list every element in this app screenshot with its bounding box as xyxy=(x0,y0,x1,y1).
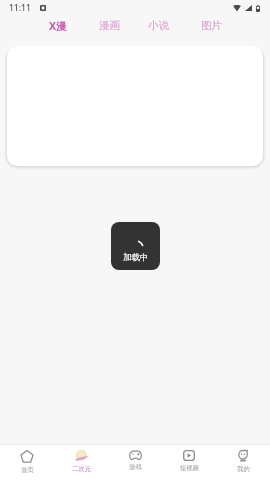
staticText: 短视频 xyxy=(180,464,199,472)
staticText: 漫画 xyxy=(99,19,120,32)
staticText: 加载中 xyxy=(123,252,149,263)
button[interactable]: X漫 xyxy=(47,15,69,37)
button[interactable]: 游戏 xyxy=(108,445,162,480)
button[interactable]: 我的 xyxy=(216,445,270,480)
staticText: 游戏 xyxy=(129,463,142,471)
staticText: 我的 xyxy=(237,465,250,473)
button[interactable]: 漫画 xyxy=(97,15,122,36)
button[interactable]: 短视频 xyxy=(162,445,216,480)
button[interactable]: 首页 xyxy=(0,445,54,480)
button[interactable]: 二次元 xyxy=(54,445,108,480)
button[interactable]: 小说 xyxy=(146,15,171,36)
staticText: 二次元 xyxy=(72,465,91,473)
staticText: X漫 xyxy=(49,19,67,33)
button[interactable]: 图片 xyxy=(199,15,224,36)
staticText: 首页 xyxy=(21,466,34,474)
staticText: 小说 xyxy=(148,19,169,32)
staticText: 11:11 xyxy=(9,2,31,14)
staticText: 图片 xyxy=(201,19,222,32)
